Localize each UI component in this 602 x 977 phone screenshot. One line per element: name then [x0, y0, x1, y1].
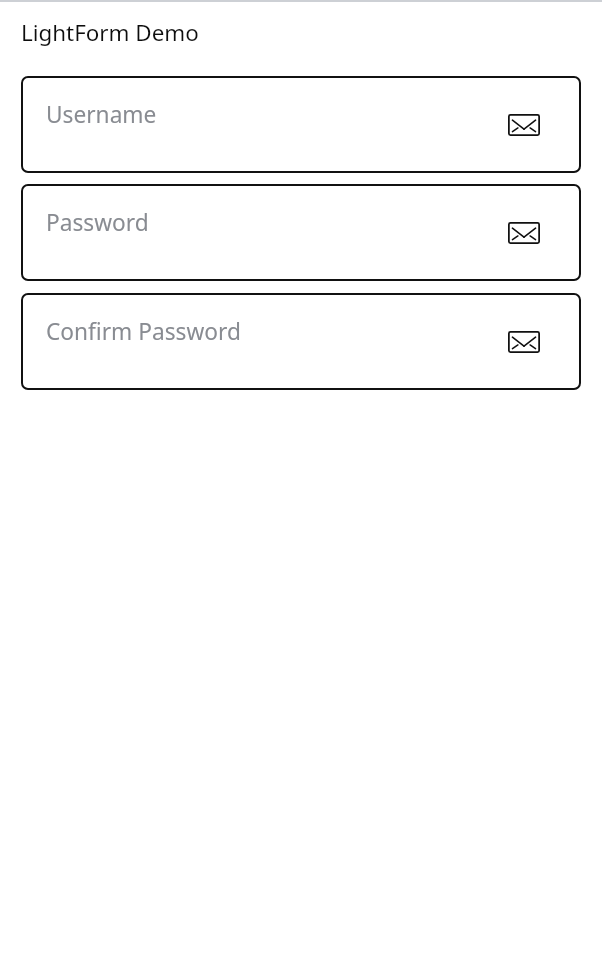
button[interactable]: Password	[21, 184, 581, 281]
other: Email	[508, 331, 540, 353]
staticText: LightForm Demo	[21, 17, 199, 48]
other: Email	[508, 222, 540, 244]
button[interactable]: Confirm Password	[21, 293, 581, 390]
button[interactable]: Username	[21, 76, 581, 173]
staticText: Password	[46, 207, 149, 238]
other: Email	[508, 114, 540, 136]
staticText: Username	[46, 99, 157, 130]
staticText: Confirm Password	[46, 316, 241, 347]
